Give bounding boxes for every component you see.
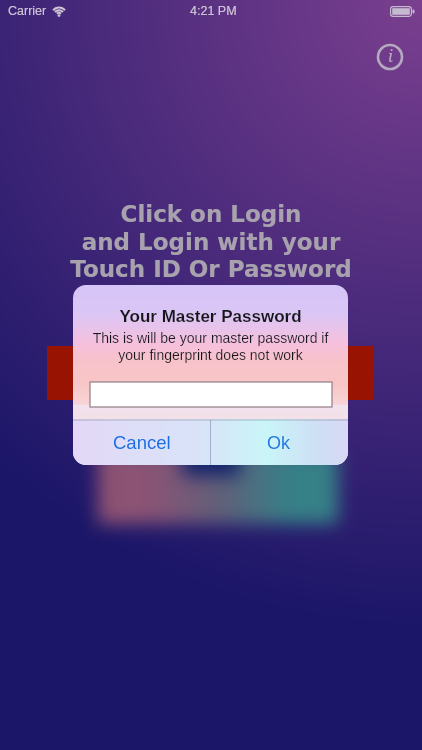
staticText: 4:21 PM: [190, 4, 237, 18]
staticText: This is will be your master password if …: [81, 330, 340, 363]
staticText: i: [388, 45, 393, 67]
button[interactable]: [90, 382, 332, 407]
button[interactable]: Ok: [210, 420, 348, 465]
staticText: Ok: [267, 433, 291, 453]
button[interactable]: Cancel: [73, 420, 210, 465]
staticText: Carrier: [8, 4, 47, 18]
button[interactable]: Info: [373, 40, 407, 74]
staticText: Cancel: [113, 432, 171, 453]
staticText: Your Master Password: [73, 307, 348, 326]
staticText: Click on Login and Login with your Touch…: [0, 201, 422, 282]
